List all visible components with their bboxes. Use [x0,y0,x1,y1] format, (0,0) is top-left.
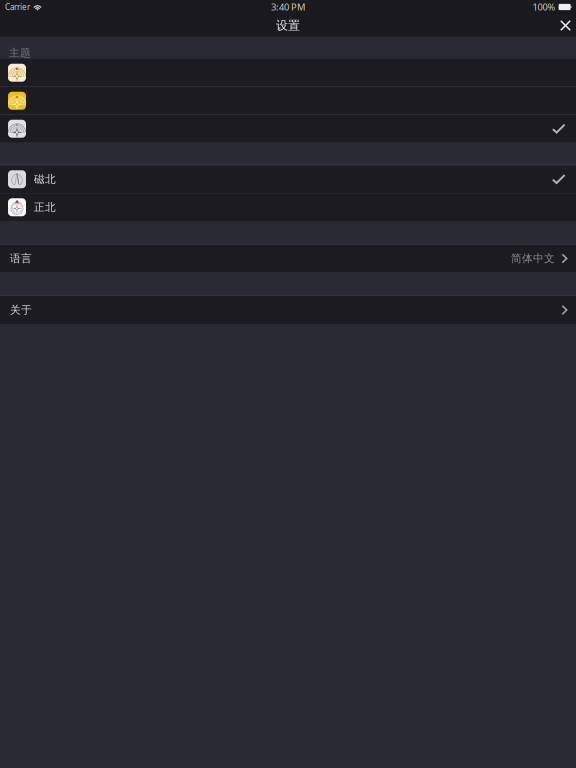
staticText: 磁北 [34,173,56,186]
staticText: 100% [533,1,556,13]
button[interactable]: Parchment theme [0,59,576,86]
button[interactable]: 正北 [0,193,576,221]
staticText: 设置 [276,18,300,33]
staticText: 主题 [9,46,31,59]
staticText: 3:40 PM [271,1,305,13]
staticText: 关于 [10,303,32,316]
button[interactable]: Gold theme [0,87,576,114]
button[interactable]: 磁北 [0,165,576,193]
button[interactable]: 关于 [0,296,576,324]
button[interactable]: 语言 [0,245,576,272]
staticText: 语言 [10,252,32,265]
staticText: 简体中文 [511,252,555,265]
staticText: 正北 [34,201,56,214]
button[interactable]: Silver theme [0,115,576,142]
staticText: Carrier [5,2,30,12]
button[interactable]: Close [560,14,576,37]
